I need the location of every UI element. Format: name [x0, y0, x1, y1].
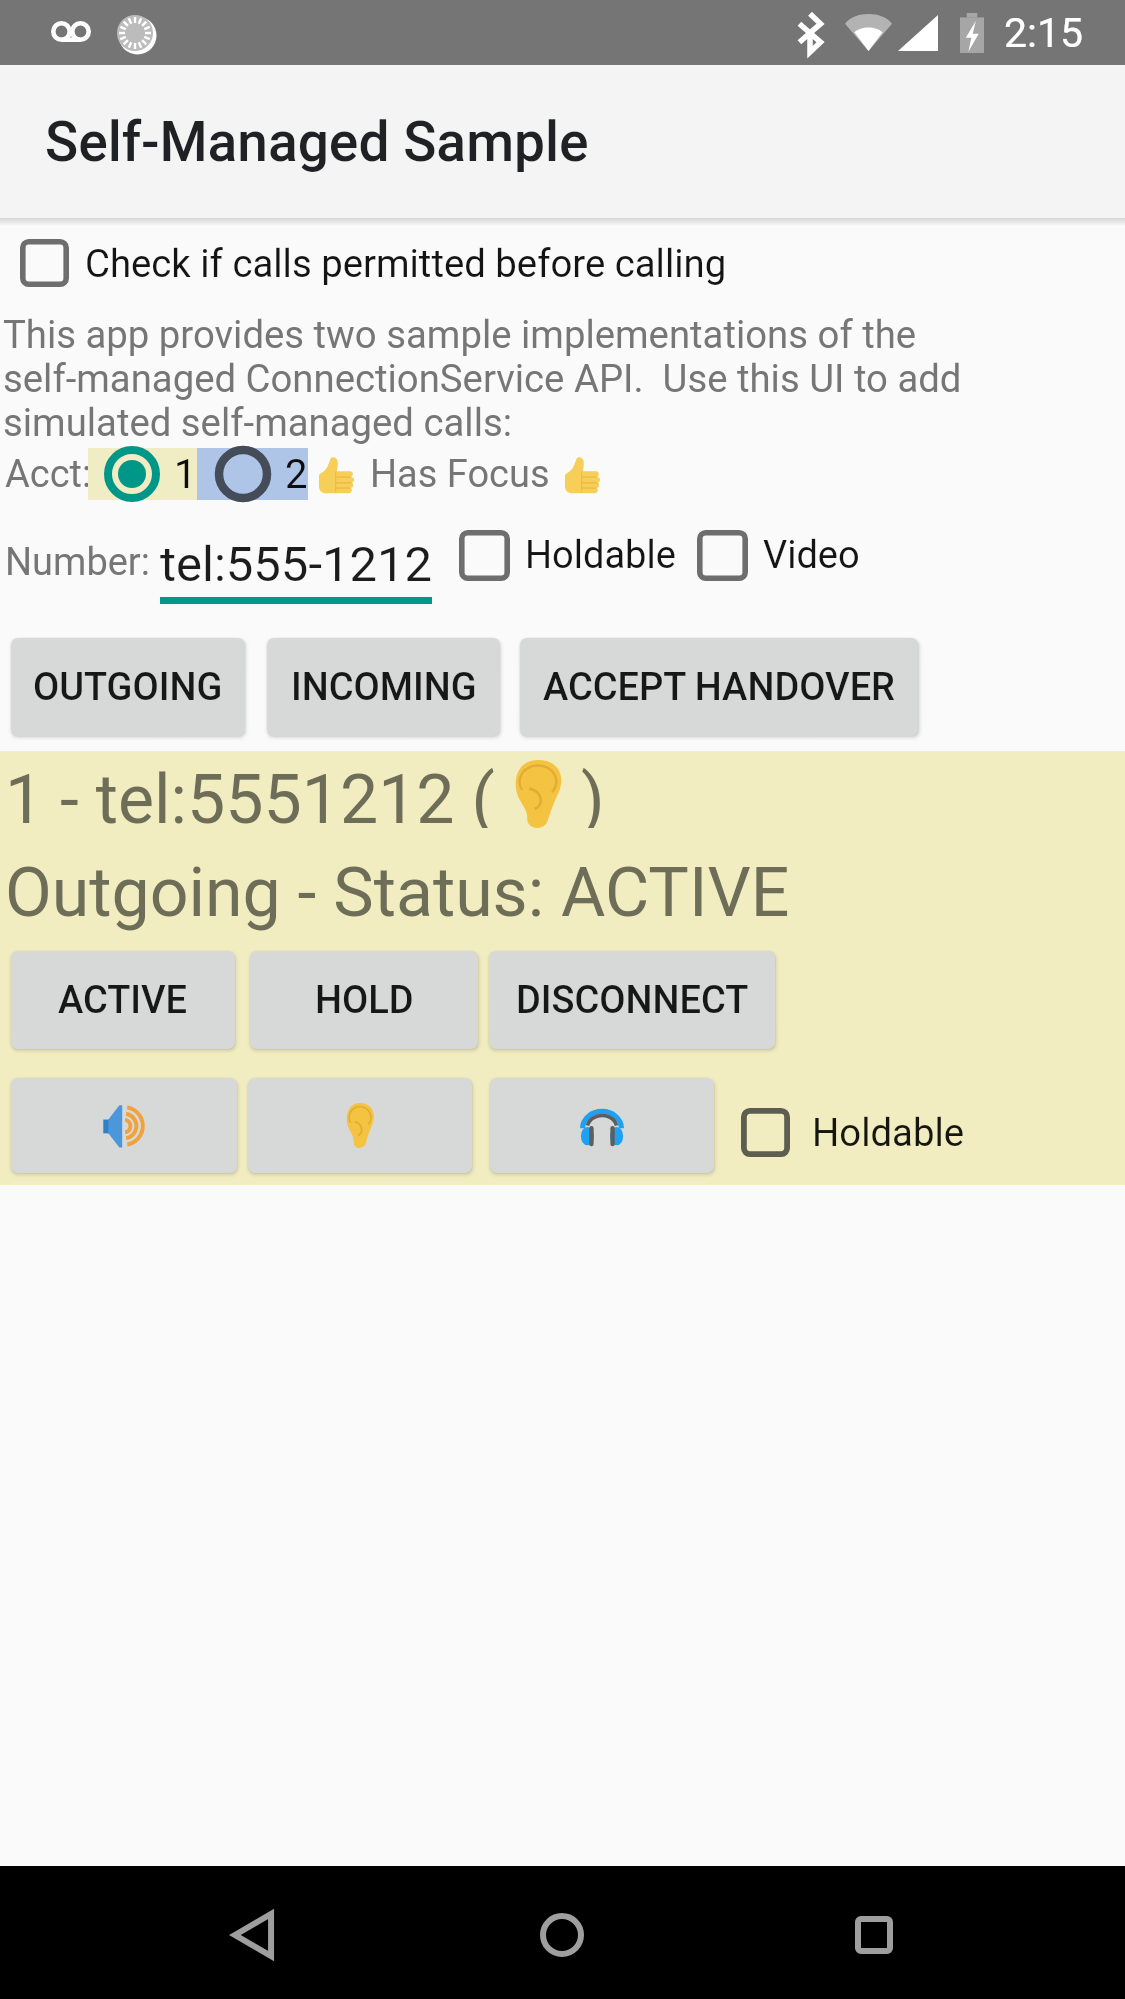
- staticText: tel:555-1212: [160, 536, 433, 593]
- button[interactable]: Recents: [804, 1866, 944, 1999]
- staticText: HOLD: [315, 978, 414, 1023]
- staticText: 2: [285, 451, 308, 498]
- staticText: 1: [174, 451, 197, 498]
- staticText: Number:: [5, 540, 150, 585]
- staticText: 1 - tel:5551212 (: [5, 760, 495, 828]
- button[interactable]: INCOMING: [267, 638, 500, 736]
- staticText: Self-Managed Sample: [45, 110, 589, 174]
- button[interactable]: Headset: [490, 1078, 714, 1173]
- button[interactable]: Holdable: [741, 1108, 965, 1157]
- staticText: ACCEPT HANDOVER: [543, 665, 895, 710]
- staticText: 2:15: [1004, 9, 1084, 57]
- staticText: ): [581, 760, 605, 828]
- button[interactable]: OUTGOING: [11, 638, 245, 736]
- button[interactable]: Home: [492, 1866, 632, 1999]
- staticText: Holdable: [812, 1110, 965, 1155]
- button[interactable]: DISCONNECT: [489, 951, 775, 1049]
- staticText: OUTGOING: [33, 665, 223, 710]
- staticText: DISCONNECT: [516, 978, 749, 1023]
- staticText: Video: [763, 533, 860, 578]
- staticText: Outgoing - Status: ACTIVE: [5, 853, 790, 933]
- button[interactable]: Check if calls permitted before calling: [0, 239, 1125, 287]
- button[interactable]: Video: [697, 530, 860, 581]
- button[interactable]: Holdable: [459, 530, 676, 581]
- button[interactable]: ACTIVE: [11, 951, 235, 1049]
- button[interactable]: HOLD: [250, 951, 478, 1049]
- button[interactable]: Speakerphone: [11, 1078, 237, 1173]
- button[interactable]: 1: [88, 448, 197, 500]
- staticText: Holdable: [525, 533, 676, 578]
- staticText: INCOMING: [291, 665, 477, 710]
- button[interactable]: ACCEPT HANDOVER: [520, 638, 918, 736]
- button[interactable]: Back: [183, 1866, 323, 1999]
- staticText: Acct:: [5, 452, 92, 497]
- button[interactable]: 2: [197, 448, 308, 500]
- staticText: Check if calls permitted before calling: [85, 241, 727, 286]
- staticText: Has Focus: [370, 452, 550, 497]
- staticText: This app provides two sample implementat…: [3, 312, 978, 445]
- staticText: ACTIVE: [58, 978, 188, 1023]
- button[interactable]: Earpiece: [248, 1078, 472, 1173]
